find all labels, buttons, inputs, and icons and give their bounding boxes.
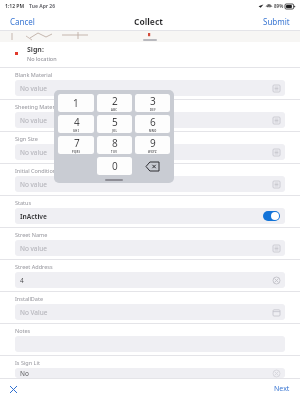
staticText: 4 (74, 115, 80, 129)
staticText: No value (20, 84, 47, 93)
button[interactable]: 1 (58, 94, 94, 112)
button[interactable]: 8 (97, 136, 132, 154)
button[interactable]: 5 (97, 115, 132, 133)
staticText: 4 (20, 276, 24, 285)
button[interactable]: Tools (8, 384, 19, 395)
staticText: No (20, 369, 29, 378)
button[interactable]: 4 (58, 115, 94, 133)
button[interactable]: Submit (261, 14, 292, 29)
staticText: InstallDate (15, 295, 43, 302)
staticText: Sign Size (15, 135, 38, 142)
staticText: Sign: (27, 45, 44, 55)
button[interactable]: Delete (135, 157, 170, 175)
button[interactable]: No value (15, 240, 285, 256)
button[interactable]: 7 (58, 136, 94, 154)
staticText: 5 (112, 115, 118, 129)
button[interactable]: No value (15, 80, 285, 96)
staticText: 3 (150, 94, 156, 108)
staticText: 9 (150, 136, 156, 150)
staticText: No Value (20, 308, 48, 317)
button[interactable]: No value (15, 112, 285, 128)
button[interactable]: 4 (15, 272, 285, 288)
button[interactable]: Next (272, 382, 292, 396)
staticText: PQRS (72, 150, 81, 154)
button[interactable]: 0 (97, 157, 132, 175)
staticText: No location (27, 55, 57, 62)
staticText: ABC (111, 108, 118, 112)
staticText: InActive (20, 212, 47, 221)
staticText: No value (20, 148, 47, 157)
button[interactable]: 3 (135, 94, 170, 112)
button[interactable]: InActive (15, 208, 285, 224)
button[interactable]: No Value (15, 304, 285, 320)
staticText: Street Address (15, 263, 53, 270)
staticText: 6 (150, 115, 156, 129)
staticText: 2 (112, 94, 118, 108)
staticText: Submit (263, 16, 290, 27)
staticText: Tue Apr 26 (29, 3, 56, 10)
staticText: No value (20, 116, 47, 125)
button[interactable]: No (15, 368, 285, 378)
staticText: Status (15, 199, 32, 206)
staticText: Collect (134, 16, 163, 28)
staticText: 7 (74, 136, 80, 150)
staticText: Sheeting Material (15, 103, 61, 110)
staticText: MNO (149, 129, 157, 133)
staticText: WXYZ (148, 150, 157, 154)
staticText: Notes (15, 327, 31, 334)
staticText: 89% (274, 3, 284, 9)
staticText: 1:12 PM (5, 3, 25, 10)
button[interactable]: 9 (135, 136, 170, 154)
other: Status toggle (263, 211, 280, 221)
staticText: Initial Condition (15, 167, 57, 174)
staticText: Next (274, 384, 290, 394)
staticText: TUV (111, 150, 118, 154)
staticText: JKL (112, 129, 118, 133)
button[interactable]: 2 (97, 94, 132, 112)
button[interactable]: Cancel (8, 14, 37, 29)
staticText: 0 (112, 159, 118, 173)
staticText: Blank Material (15, 71, 53, 78)
button[interactable]: No value (15, 144, 285, 160)
staticText: No value (20, 180, 47, 189)
staticText: Street Name (15, 231, 48, 238)
staticText: DEF (150, 108, 156, 112)
button[interactable]: 6 (135, 115, 170, 133)
staticText: 1 (73, 96, 79, 110)
staticText: 8 (112, 136, 118, 150)
staticText: Is Sign Lit (15, 359, 40, 366)
staticText: GHI (73, 129, 80, 133)
staticText: Cancel (10, 16, 35, 27)
button[interactable]: No value (15, 176, 285, 192)
staticText: No value (20, 244, 47, 253)
